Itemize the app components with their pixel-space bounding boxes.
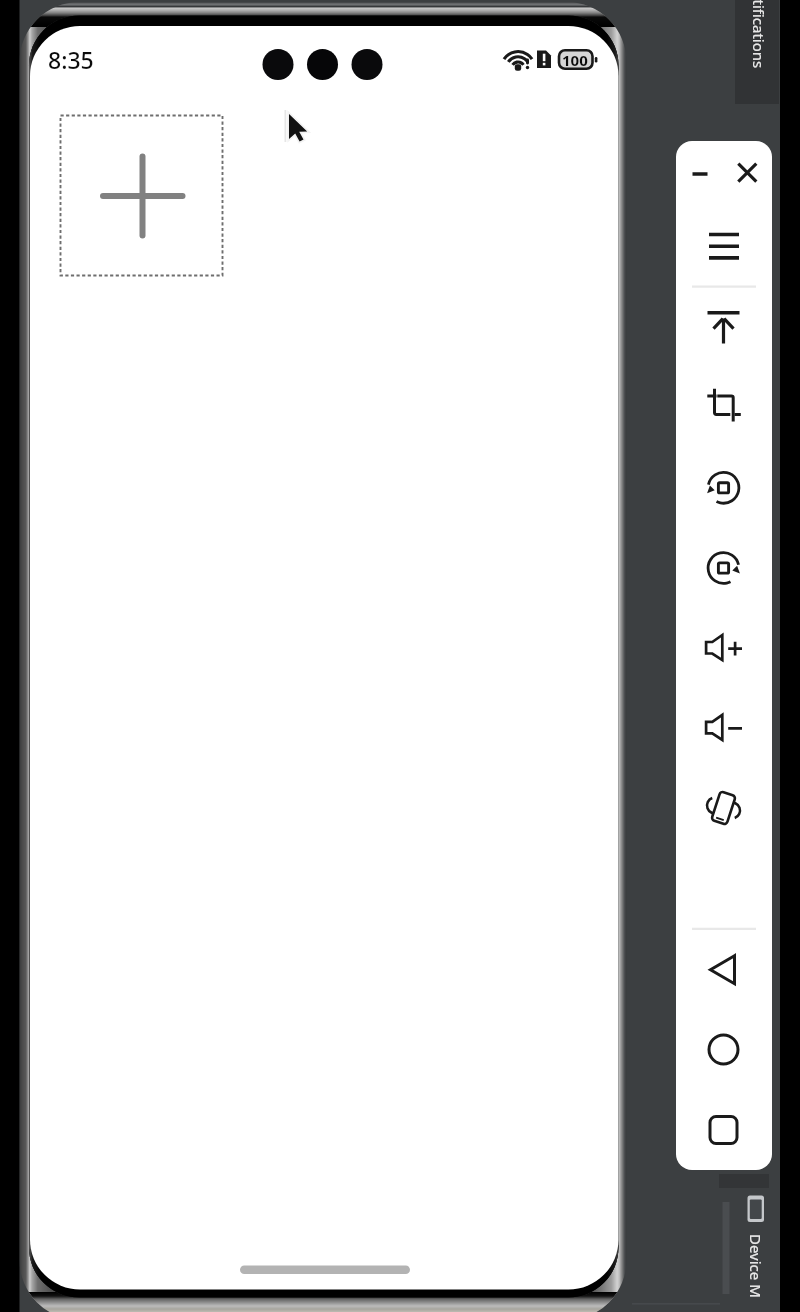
button[interactable]: Notifications <box>735 0 779 104</box>
staticText: Notifications <box>749 0 769 69</box>
button[interactable]: Volume up <box>700 625 748 671</box>
button[interactable]: Power <box>700 295 748 341</box>
staticText: 100 <box>562 50 588 70</box>
button[interactable]: Close <box>730 157 766 191</box>
button[interactable]: Overview <box>700 1107 748 1153</box>
button[interactable]: Home <box>700 1027 748 1073</box>
button[interactable]: Back <box>700 947 748 993</box>
button[interactable]: Add widget <box>60 115 223 276</box>
staticText: Device M <box>746 1234 766 1298</box>
button[interactable]: Volume down <box>700 705 748 751</box>
button[interactable]: Device Manager <box>740 1190 780 1312</box>
button[interactable]: Menu <box>700 219 748 257</box>
button[interactable]: Rotate right <box>700 545 748 591</box>
button[interactable]: Minimize <box>690 159 722 189</box>
staticText: 8:35 <box>48 44 94 75</box>
button[interactable]: Rotate left <box>700 465 748 511</box>
button[interactable]: Rotate screen <box>700 785 748 831</box>
button[interactable]: Resize <box>700 383 748 427</box>
